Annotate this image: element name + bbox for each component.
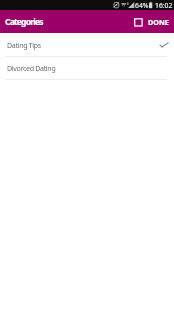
staticText: Divorced Dating: [7, 64, 56, 74]
button[interactable]: DONE: [128, 17, 174, 27]
staticText: 16:02: [155, 1, 173, 10]
button[interactable]: Divorced Dating: [0, 57, 174, 79]
staticText: DONE: [148, 17, 169, 27]
button[interactable]: Dating Tips: [0, 33, 174, 56]
staticText: Dating Tips: [7, 41, 41, 51]
staticText: 64%: [135, 1, 149, 10]
staticText: Categories: [5, 16, 43, 28]
